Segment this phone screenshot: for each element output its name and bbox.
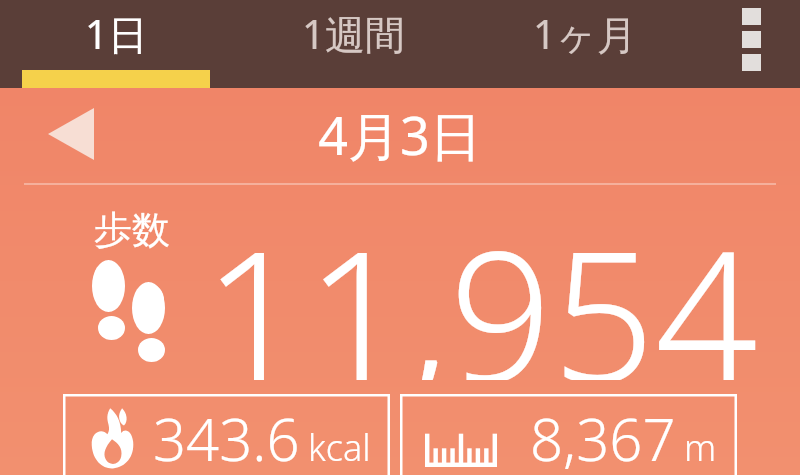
button[interactable]: 8,367 (400, 394, 737, 475)
button[interactable]: More options (716, 0, 788, 88)
staticText: 1週間 (302, 6, 405, 61)
button[interactable]: 343.6 (63, 394, 390, 475)
staticText: 8,367 (530, 399, 676, 475)
staticText: kcal (308, 423, 371, 472)
staticText: 343.6 (153, 399, 300, 475)
button[interactable]: Previous day (30, 96, 110, 172)
staticText: 4月3日 (318, 99, 482, 170)
staticText: 歩数 (94, 206, 170, 254)
staticText: m (684, 423, 717, 472)
staticText: 1日 (85, 6, 148, 61)
staticText: 11,954 (203, 190, 758, 380)
button[interactable]: 1ヶ月 (480, 0, 690, 88)
button[interactable]: 1日 (22, 0, 210, 88)
staticText: 1ヶ月 (533, 6, 637, 61)
button[interactable]: 1週間 (248, 0, 458, 88)
